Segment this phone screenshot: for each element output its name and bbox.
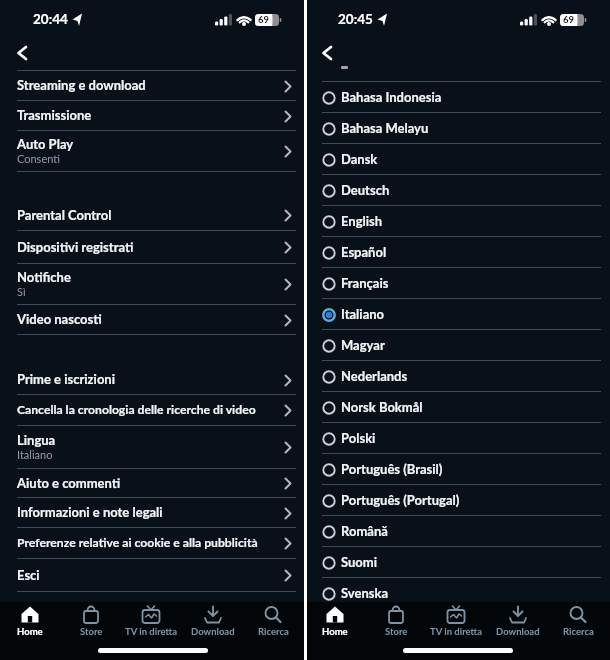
staticText: Notifiche bbox=[17, 269, 71, 285]
staticText: Dispositivi registrati bbox=[17, 239, 134, 255]
button[interactable]: Trasmissione bbox=[0, 101, 305, 131]
button[interactable]: Store bbox=[367, 602, 425, 646]
staticText: Français bbox=[341, 275, 389, 291]
button[interactable]: Download bbox=[184, 602, 242, 646]
staticText: Aiuto e commenti bbox=[17, 475, 121, 491]
button[interactable]: Polski bbox=[305, 423, 610, 454]
staticText: Esci bbox=[17, 567, 40, 583]
staticText: Ricerca bbox=[563, 626, 594, 637]
staticText: Prime e iscrizioni bbox=[17, 371, 115, 387]
staticText: Store bbox=[385, 626, 408, 637]
staticText: Auto Play bbox=[17, 136, 74, 152]
staticText: Trasmissione bbox=[17, 107, 92, 123]
staticText: 20:45 bbox=[338, 11, 373, 27]
button[interactable]: Ricerca bbox=[244, 602, 302, 646]
staticText: Svenska bbox=[341, 585, 389, 601]
staticText: Download bbox=[191, 626, 235, 637]
staticText: Informazioni e note legali bbox=[17, 504, 163, 520]
button[interactable]: Magyar bbox=[305, 330, 610, 361]
staticText: Bahasa Melayu bbox=[341, 120, 429, 136]
button[interactable]: Italiano bbox=[305, 299, 610, 330]
staticText: Video nascosti bbox=[17, 311, 102, 327]
staticText: Home bbox=[17, 626, 43, 637]
button[interactable]: Bahasa Indonesia bbox=[305, 82, 610, 113]
staticText: 69 bbox=[258, 14, 270, 25]
button[interactable]: Ricerca bbox=[549, 602, 607, 646]
button[interactable]: Esci bbox=[0, 559, 305, 592]
button[interactable]: Auto Play bbox=[0, 131, 305, 172]
staticText: TV in diretta bbox=[430, 626, 483, 637]
button[interactable]: Streaming e download bbox=[0, 71, 305, 101]
button[interactable]: Română bbox=[305, 516, 610, 547]
staticText: Português (Brasil) bbox=[341, 461, 443, 477]
button[interactable]: Français bbox=[305, 268, 610, 299]
staticText: Polski bbox=[341, 430, 376, 446]
button[interactable]: Notifiche bbox=[0, 264, 305, 305]
button[interactable]: Español bbox=[305, 237, 610, 268]
staticText: 20:44 bbox=[33, 11, 68, 27]
staticText: Nederlands bbox=[341, 368, 408, 384]
staticText: Norsk Bokmål bbox=[341, 399, 423, 415]
staticText: 69 bbox=[563, 14, 575, 25]
button[interactable]: Português (Brasil) bbox=[305, 454, 610, 485]
staticText: Download bbox=[496, 626, 540, 637]
staticText: Italiano bbox=[341, 306, 385, 322]
button[interactable]: Prime e iscrizioni bbox=[0, 365, 305, 395]
button[interactable]: Português (Portugal) bbox=[305, 485, 610, 516]
staticText: Deutsch bbox=[341, 182, 390, 198]
staticText: Preferenze relative ai cookie e alla pub… bbox=[17, 535, 258, 550]
staticText: Español bbox=[341, 244, 387, 260]
staticText: Consenti bbox=[17, 152, 61, 165]
button[interactable]: Home bbox=[306, 602, 364, 646]
button[interactable]: Home bbox=[1, 602, 59, 646]
button[interactable]: Cancella la cronologia delle ricerche di… bbox=[0, 395, 305, 426]
button[interactable] bbox=[8, 40, 40, 66]
staticText: Home bbox=[322, 626, 348, 637]
button[interactable]: Download bbox=[489, 602, 547, 646]
button[interactable]: English bbox=[305, 206, 610, 237]
button[interactable]: Svenska bbox=[305, 578, 610, 609]
button[interactable]: Nederlands bbox=[305, 361, 610, 392]
button[interactable]: Video nascosti bbox=[0, 305, 305, 335]
staticText: Magyar bbox=[341, 337, 385, 353]
staticText: Bahasa Indonesia bbox=[341, 89, 442, 105]
button[interactable]: Bahasa Melayu bbox=[305, 113, 610, 144]
staticText: Lingua bbox=[17, 432, 56, 448]
staticText: Sì bbox=[17, 285, 26, 298]
staticText: Parental Control bbox=[17, 207, 112, 223]
button[interactable] bbox=[313, 40, 345, 66]
staticText: English bbox=[341, 213, 383, 229]
button[interactable]: Informazioni e note legali bbox=[0, 498, 305, 528]
button[interactable]: Norsk Bokmål bbox=[305, 392, 610, 423]
staticText: Português (Portugal) bbox=[341, 492, 460, 508]
staticText: Streaming e download bbox=[17, 77, 146, 93]
staticText: Ricerca bbox=[258, 626, 289, 637]
button[interactable]: TV in diretta bbox=[427, 602, 485, 646]
button[interactable]: Parental Control bbox=[0, 200, 305, 231]
staticText: TV in diretta bbox=[125, 626, 178, 637]
button[interactable]: Aiuto e commenti bbox=[0, 469, 305, 498]
button[interactable]: TV in diretta bbox=[122, 602, 180, 646]
staticText: Store bbox=[80, 626, 103, 637]
button[interactable]: Dansk bbox=[305, 144, 610, 175]
button[interactable]: Store bbox=[62, 602, 120, 646]
staticText: Cancella la cronologia delle ricerche di… bbox=[17, 402, 256, 417]
staticText: Italiano bbox=[17, 448, 53, 461]
button[interactable]: Deutsch bbox=[305, 175, 610, 206]
staticText: Română bbox=[341, 523, 388, 539]
button[interactable]: Lingua bbox=[0, 426, 305, 469]
button[interactable]: Preferenze relative ai cookie e alla pub… bbox=[0, 528, 305, 559]
staticText: Dansk bbox=[341, 151, 378, 167]
button[interactable]: Dispositivi registrati bbox=[0, 231, 305, 264]
button[interactable]: Suomi bbox=[305, 547, 610, 578]
staticText: Suomi bbox=[341, 554, 378, 570]
